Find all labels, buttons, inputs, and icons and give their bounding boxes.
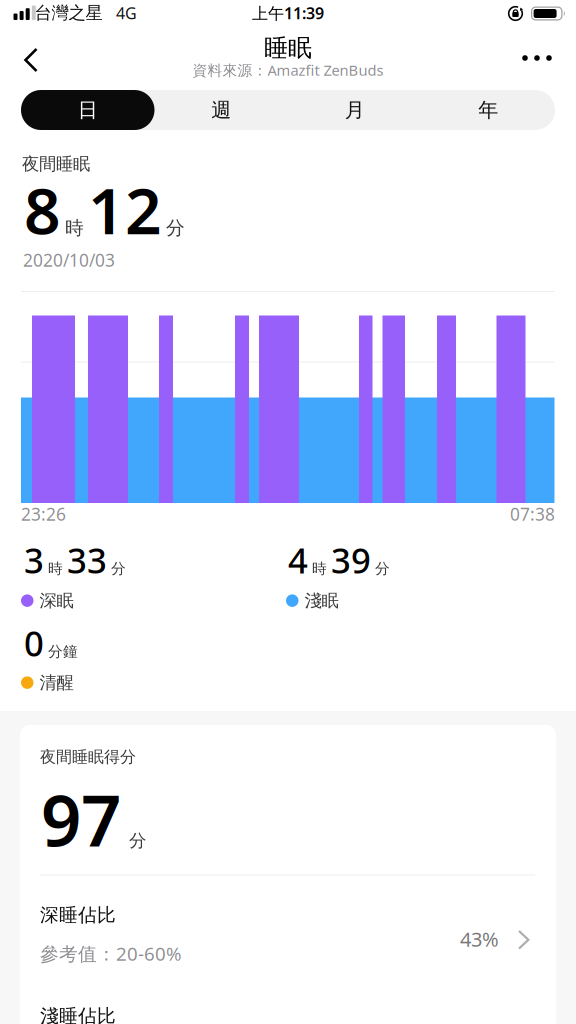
staticText: 日 <box>78 98 98 122</box>
staticText: 年 <box>478 98 498 122</box>
staticText: 月 <box>345 98 365 122</box>
button[interactable]: 月 <box>288 90 421 130</box>
button[interactable]: 年 <box>421 90 555 130</box>
staticText: 4 <box>288 537 308 583</box>
button[interactable]: More <box>513 41 561 75</box>
staticText: 23:26 <box>21 502 66 525</box>
staticText: 4G <box>116 2 137 24</box>
staticText: 夜間睡眠 <box>22 153 90 175</box>
staticText: 2020/10/03 <box>23 248 115 271</box>
staticText: 夜間睡眠得分 <box>40 747 136 767</box>
staticText: 淺睡佔比 <box>40 1004 116 1024</box>
button[interactable]: Back <box>16 43 56 77</box>
staticText: 07:38 <box>510 502 555 525</box>
staticText: 資料來源：Amazfit ZenBuds <box>192 60 383 80</box>
staticText: 週 <box>211 98 231 122</box>
button[interactable]: 深睡佔比 <box>40 895 536 973</box>
staticText: 時 <box>65 217 84 240</box>
staticText: 分鐘 <box>48 642 78 660</box>
staticText: 清醒 <box>39 672 73 693</box>
staticText: 淺眠 <box>304 590 338 611</box>
staticText: 分 <box>111 559 126 577</box>
staticText: 8 <box>24 167 61 252</box>
staticText: 時 <box>48 559 63 577</box>
staticText: 分 <box>129 830 146 851</box>
staticText: 43% <box>460 926 499 952</box>
staticText: 參考值：20-60% <box>40 941 182 966</box>
staticText: 台灣之星 <box>34 2 102 24</box>
staticText: 12 <box>88 167 162 252</box>
staticText: 分 <box>375 559 390 577</box>
staticText: 97 <box>41 772 121 866</box>
staticText: 39 <box>331 537 371 583</box>
button[interactable]: 淺睡佔比 <box>40 1006 536 1024</box>
staticText: 時 <box>312 559 327 577</box>
button[interactable]: 週 <box>154 90 288 130</box>
button[interactable]: 日 <box>21 90 154 130</box>
staticText: 分 <box>166 217 185 240</box>
staticText: 3 <box>24 537 44 583</box>
staticText: 上午11:39 <box>252 2 324 24</box>
staticText: 深眠 <box>39 590 73 611</box>
staticText: 33 <box>67 537 107 583</box>
staticText: 深睡佔比 <box>40 903 116 926</box>
staticText: 睡眠 <box>264 33 312 63</box>
staticText: 0 <box>24 620 44 666</box>
